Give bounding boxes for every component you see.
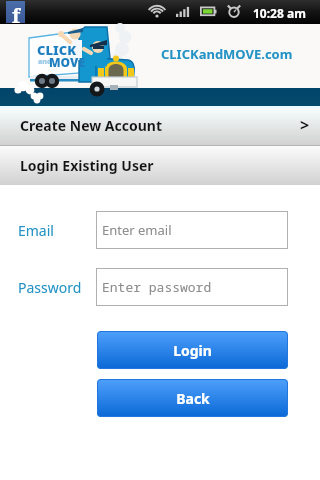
other: Facebook notification: [6, 1, 25, 23]
staticText: Back: [176, 389, 210, 408]
staticText: Create New Account: [20, 116, 163, 135]
staticText: Enter email: [102, 221, 172, 239]
staticText: CLICKandMOVE.com: [161, 45, 293, 63]
staticText: and: [38, 57, 52, 67]
button[interactable]: Enter email: [96, 211, 288, 249]
button[interactable]: Enter password: [96, 268, 288, 306]
staticText: Email: [18, 221, 54, 240]
button[interactable]: Login Existing User: [0, 146, 320, 185]
staticText: MOVE: [49, 54, 85, 70]
staticText: Password: [18, 278, 82, 297]
button[interactable]: Back: [97, 379, 288, 417]
staticText: Login: [173, 341, 212, 360]
staticText: Login Existing User: [20, 156, 154, 175]
staticText: CLICK: [37, 41, 77, 59]
button[interactable]: Login: [97, 331, 288, 369]
staticText: Enter password: [102, 278, 212, 296]
staticText: 10:28 am: [253, 5, 306, 21]
staticText: >: [300, 114, 310, 136]
button[interactable]: Create New Account: [0, 106, 320, 145]
staticText: f: [12, 2, 21, 24]
